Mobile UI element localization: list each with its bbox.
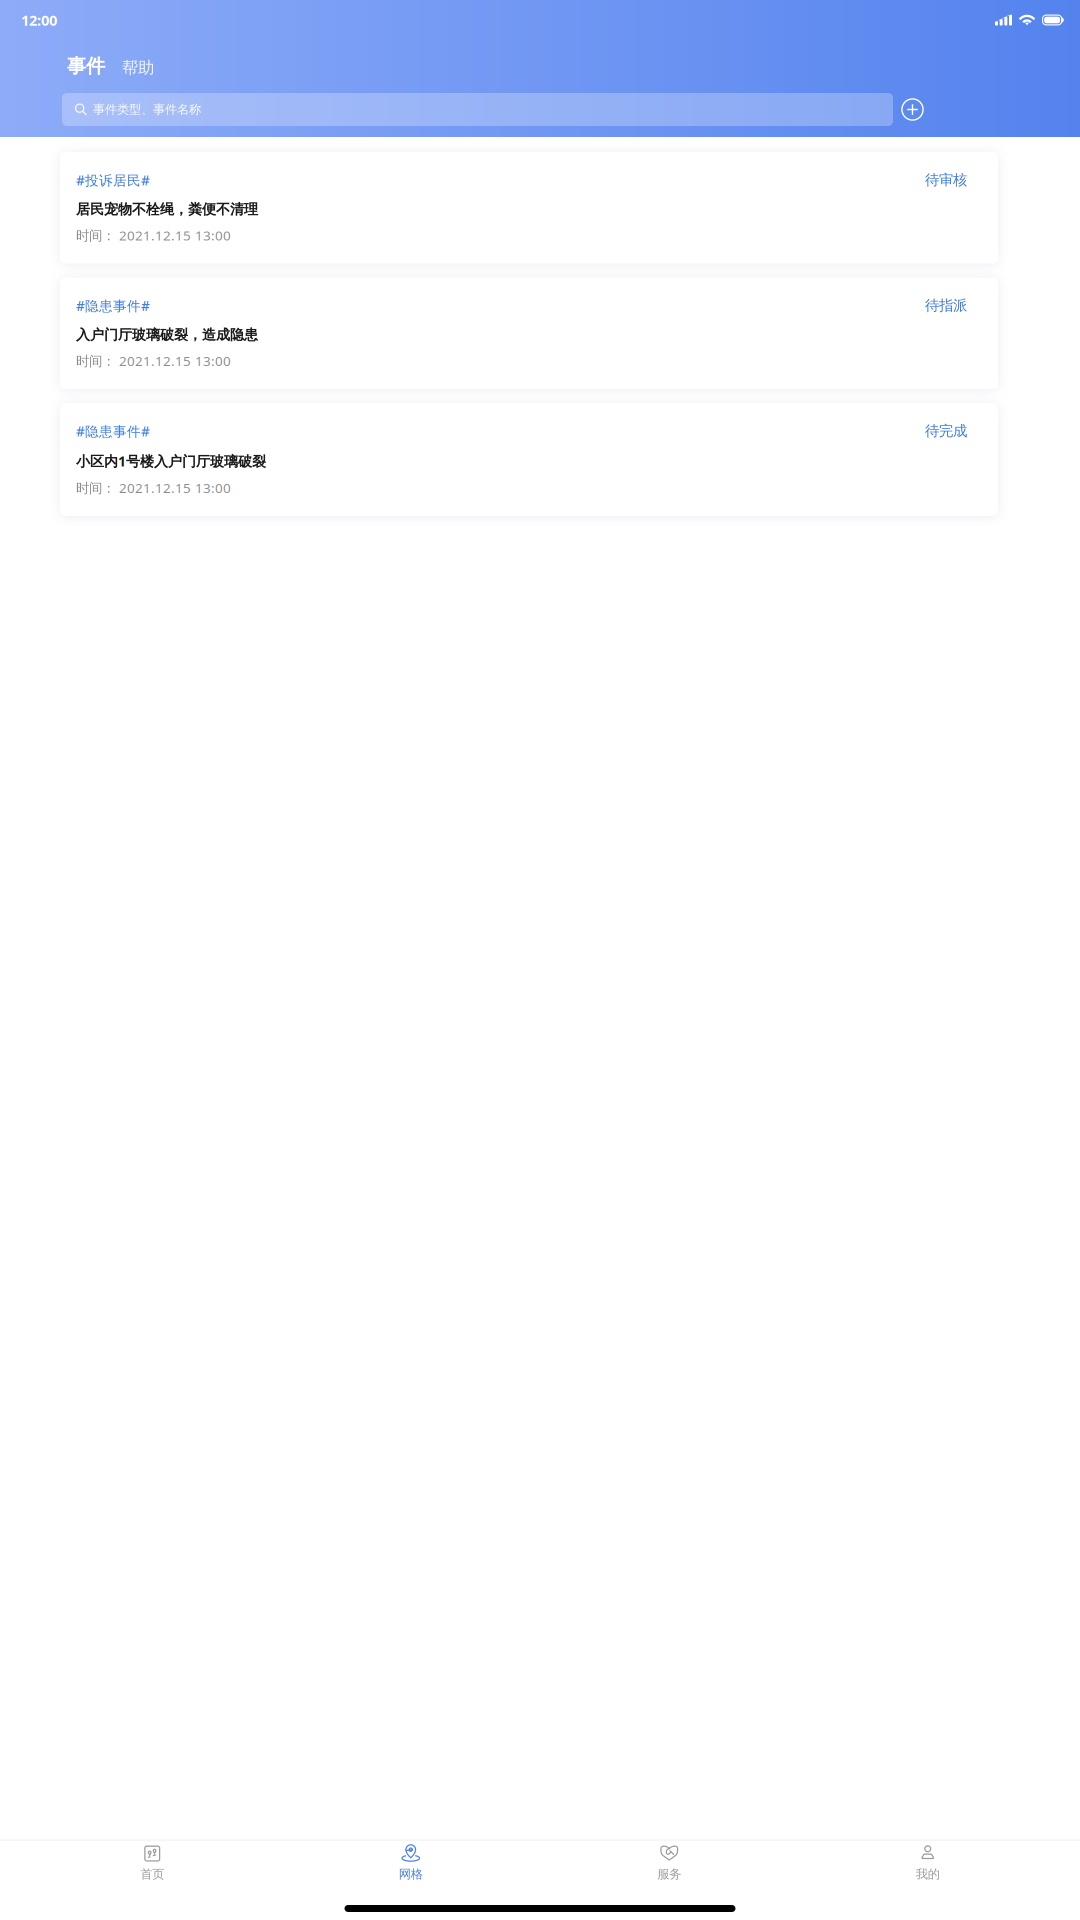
staticText: #隐患事件# [76, 296, 150, 315]
staticText: 待审核 [925, 171, 967, 189]
button[interactable]: #隐患事件# [60, 403, 998, 516]
staticText: 事件 [67, 54, 105, 78]
staticText: 帮助 [122, 57, 154, 78]
staticText: 小区内1号楼入户门厅玻璃破裂 [76, 451, 266, 471]
staticText: 时间： 2021.12.15 13:00 [76, 352, 231, 370]
button[interactable]: 新增事件 [897, 94, 928, 125]
button[interactable]: 我的 [798, 1840, 1057, 1888]
staticText: 首页 [140, 1866, 164, 1882]
staticText: #隐患事件# [76, 422, 150, 440]
button[interactable]: 服务 [540, 1840, 798, 1888]
staticText: 待指派 [925, 296, 967, 315]
staticText: 待完成 [925, 422, 967, 440]
button[interactable]: 事件类型、事件名称 [62, 93, 893, 126]
staticText: 入户门厅玻璃破裂，造成隐患 [76, 326, 258, 344]
staticText: 网格 [399, 1866, 423, 1882]
staticText: 居民宠物不栓绳，粪便不清理 [76, 200, 258, 218]
button[interactable]: 首页 [23, 1840, 281, 1888]
button[interactable]: 网格 [281, 1840, 540, 1888]
button[interactable]: #隐患事件# [60, 277, 998, 389]
staticText: 服务 [657, 1866, 681, 1882]
staticText: 12:00 [21, 10, 57, 30]
staticText: 时间： 2021.12.15 13:00 [76, 226, 231, 244]
staticText: 事件类型、事件名称 [93, 102, 201, 117]
staticText: 时间： 2021.12.15 13:00 [76, 479, 231, 497]
staticText: #投诉居民# [76, 171, 150, 189]
button[interactable]: #投诉居民# [60, 152, 998, 263]
staticText: 我的 [916, 1866, 940, 1882]
button[interactable]: 帮助 [122, 57, 154, 78]
